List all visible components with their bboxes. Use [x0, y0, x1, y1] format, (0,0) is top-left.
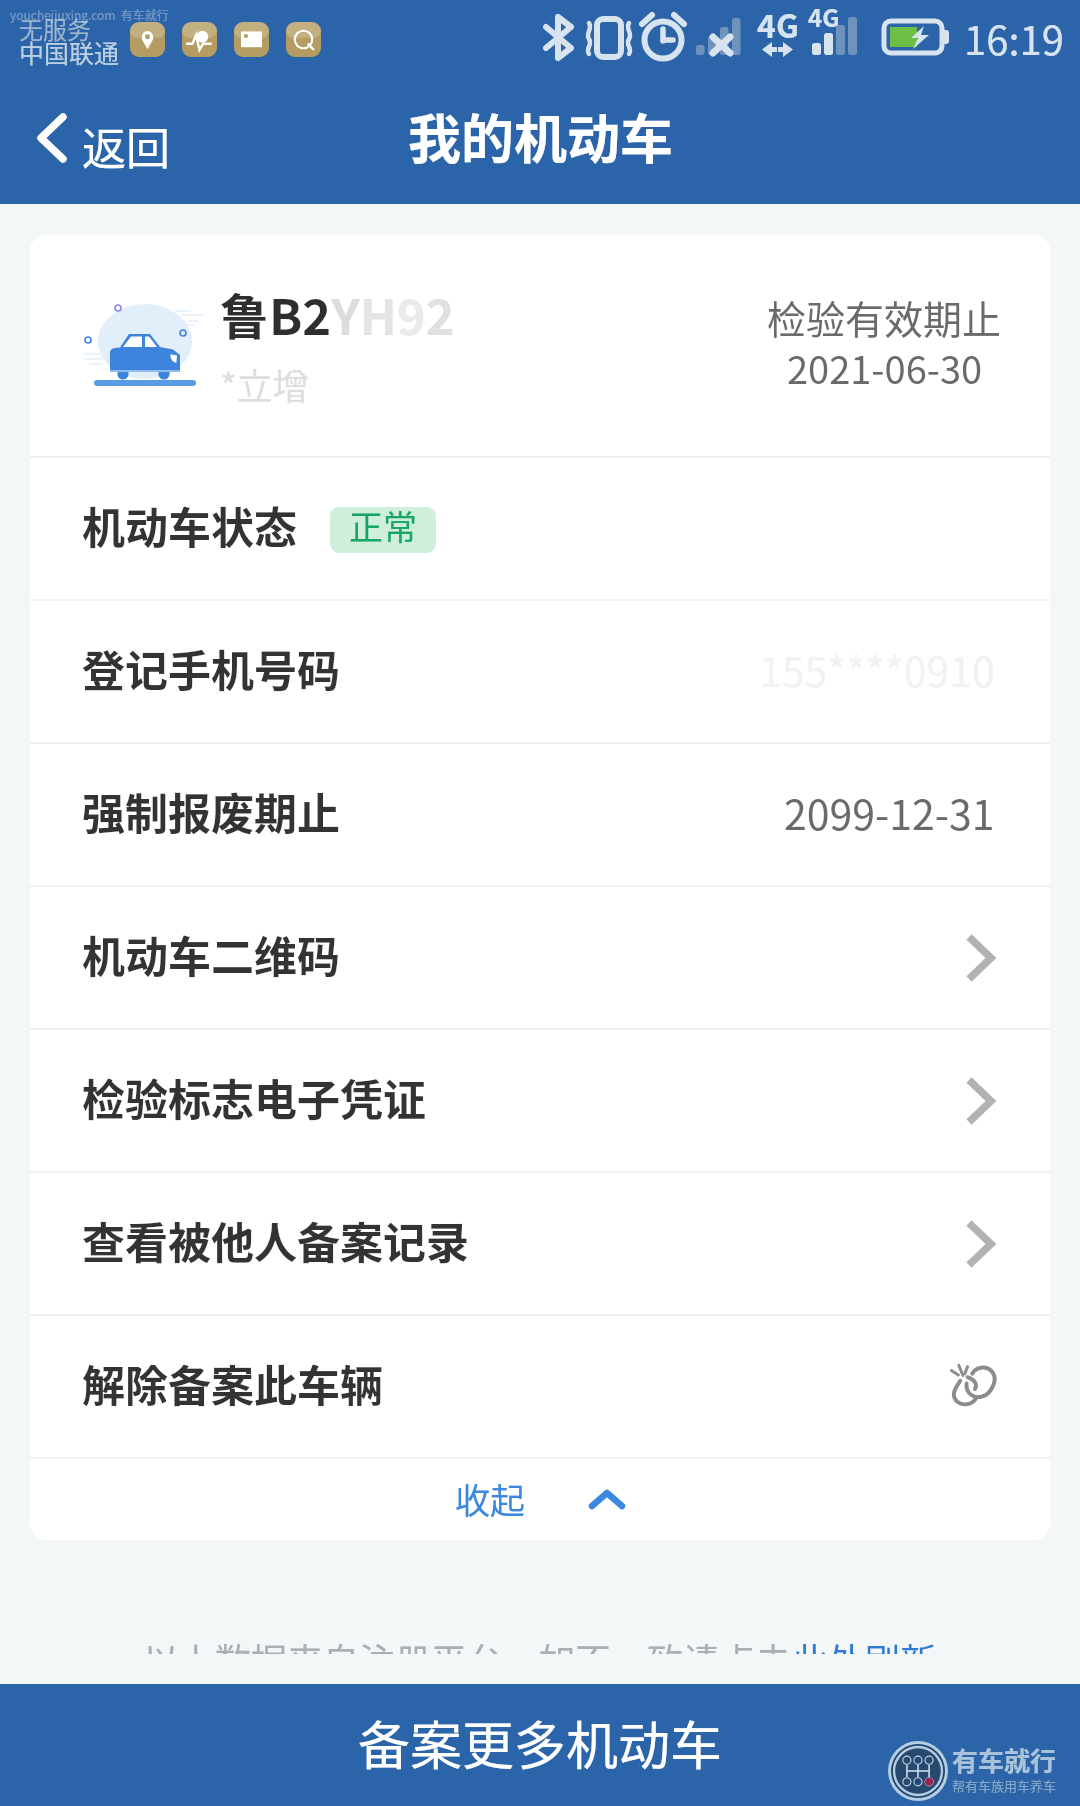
- staticText: 中国联通: [19, 34, 120, 70]
- staticText: 鲁B2YH92: [220, 278, 455, 349]
- staticText: 4G: [757, 1, 799, 47]
- staticText: 2021-06-30: [787, 340, 983, 395]
- other: 解除备案此车辆: [951, 1364, 997, 1408]
- staticText: youchejiuxing.com 有车就行: [10, 6, 169, 23]
- staticText: 机动车二维码: [82, 923, 340, 985]
- staticText: 无服务: [19, 11, 91, 46]
- other: 查看被他人备案记录: [469, 1220, 994, 1268]
- staticText: 检验有效期止: [767, 289, 1002, 345]
- staticText: 收起: [455, 1473, 526, 1524]
- staticText: *立增: [220, 358, 309, 410]
- staticText: 16:19: [964, 9, 1064, 67]
- staticText: 155****0910: [759, 639, 995, 698]
- staticText: 解除备案此车辆: [82, 1352, 383, 1414]
- staticText: 4G: [808, 0, 840, 34]
- staticText: 2099-12-31: [784, 782, 995, 841]
- button[interactable]: 返回: [0, 90, 190, 204]
- staticText: 检验标志电子凭证: [82, 1066, 426, 1128]
- staticText: 查看被他人备案记录: [82, 1209, 469, 1271]
- button[interactable]: 机动车状态: [30, 458, 1050, 599]
- staticText: 返回: [82, 114, 170, 178]
- staticText: 正常: [349, 507, 417, 547]
- staticText: 此处刷新: [792, 1638, 937, 1654]
- button[interactable]: 备案更多机动车: [0, 1684, 1080, 1806]
- staticText: 以上数据来自注册平台，如不一致请点击: [143, 1638, 792, 1654]
- other: 检验标志电子凭证: [426, 1077, 994, 1125]
- button[interactable]: 收起: [30, 1459, 1050, 1540]
- staticText: 有车就行: [952, 1741, 1057, 1779]
- staticText: 机动车状态: [82, 494, 297, 556]
- button[interactable]: 解除备案此车辆: [30, 1316, 1050, 1457]
- staticText: 备案更多机动车: [358, 1705, 723, 1780]
- button[interactable]: 查看被他人备案记录: [30, 1173, 1050, 1314]
- staticText: 我的机动车: [408, 98, 673, 175]
- staticText: 帮有车族用车养车: [952, 1776, 1057, 1795]
- other: 机动车二维码: [340, 934, 994, 982]
- button[interactable]: 登记手机号码: [30, 601, 1050, 742]
- button[interactable]: 机动车二维码: [30, 887, 1050, 1028]
- staticText: 强制报废期止: [82, 780, 340, 842]
- staticText: 登记手机号码: [82, 637, 340, 699]
- button[interactable]: 强制报废期止: [30, 744, 1050, 885]
- button[interactable]: 检验标志电子凭证: [30, 1030, 1050, 1171]
